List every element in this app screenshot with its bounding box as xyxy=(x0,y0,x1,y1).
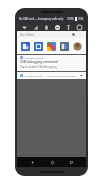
button[interactable]: Battery xyxy=(42,23,50,31)
button[interactable]: Signal xyxy=(31,23,39,31)
button[interactable]: Back xyxy=(27,157,37,167)
staticText: · USB charging this device xyxy=(45,74,76,77)
staticText: USB debugging connected xyxy=(20,60,58,64)
button[interactable]: Recents xyxy=(66,157,76,167)
button[interactable]: Android system xyxy=(17,72,86,79)
button[interactable]: Home xyxy=(47,157,57,167)
button[interactable]: Messages xyxy=(20,41,31,52)
staticText: Android system xyxy=(25,74,44,77)
button[interactable]: Flashlight xyxy=(64,23,72,31)
staticText: Android system xyxy=(25,56,44,59)
button[interactable]: Do not disturb xyxy=(53,23,61,31)
button[interactable]: Files xyxy=(59,41,70,52)
button[interactable]: Screen xyxy=(33,41,44,52)
button[interactable]: Wifi xyxy=(20,23,28,31)
staticText: 100% xyxy=(67,17,74,21)
staticText: Bus Other xyxy=(20,33,34,37)
button[interactable]: Android system xyxy=(17,55,86,71)
staticText: Tap to disable USB debugging xyxy=(20,65,57,69)
button[interactable]: Maps xyxy=(46,41,57,52)
button[interactable]: Settings xyxy=(71,32,76,37)
button[interactable]: More xyxy=(78,32,83,37)
staticText: ··· xyxy=(79,33,82,37)
staticText: No SIM card — Emergency calls only xyxy=(19,17,64,21)
button[interactable]: Settings xyxy=(75,23,83,31)
button[interactable]: Profile xyxy=(72,41,83,52)
staticText: 7:56 xyxy=(78,17,84,21)
